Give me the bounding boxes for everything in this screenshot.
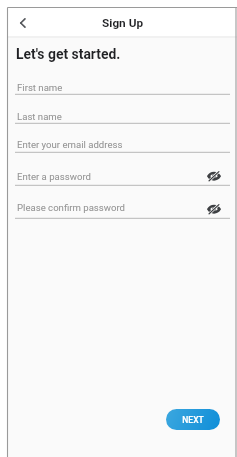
other: Toggle password visibility	[207, 202, 220, 215]
button[interactable]: Enter a password	[8, 153, 237, 186]
button[interactable]: Back	[11, 11, 35, 35]
staticText: NEXT	[182, 415, 204, 425]
staticText: Please confirm password	[17, 202, 126, 213]
staticText: Enter a password	[17, 171, 91, 182]
button[interactable]: First name	[8, 66, 237, 95]
button[interactable]: NEXT	[166, 409, 220, 430]
other: Toggle password visibility	[207, 169, 220, 182]
staticText: Let's get started.	[16, 46, 121, 62]
staticText: Sign Up	[102, 16, 144, 30]
staticText: Last name	[17, 111, 62, 122]
button[interactable]: Please confirm password	[8, 186, 237, 219]
button[interactable]: Last name	[8, 95, 237, 124]
staticText: First name	[17, 82, 63, 93]
staticText: Enter your email address	[17, 139, 123, 150]
button[interactable]: Enter your email address	[8, 124, 237, 153]
